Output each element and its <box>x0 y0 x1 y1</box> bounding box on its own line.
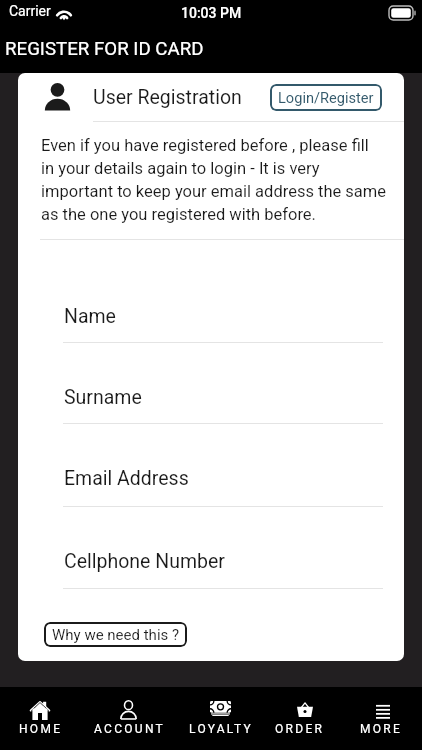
staticText: User Registration <box>93 86 242 109</box>
staticText: Surname <box>64 386 142 409</box>
staticText: Cellphone Number <box>64 550 225 573</box>
button[interactable]: MORE <box>338 687 422 750</box>
staticText: ORDER <box>275 722 325 736</box>
staticText: HOME <box>19 722 63 736</box>
staticText: Carrier <box>9 3 51 19</box>
button[interactable]: LOYALTY <box>178 687 262 750</box>
staticText: Email Address <box>64 467 189 490</box>
staticText: Login/Register <box>278 89 374 106</box>
staticText: 10:03 PM <box>181 5 242 21</box>
staticText: MORE <box>360 722 403 736</box>
staticText: REGISTER FOR ID CARD <box>5 38 204 60</box>
button[interactable]: ACCOUNT <box>87 687 171 750</box>
staticText: LOYALTY <box>189 722 253 736</box>
staticText: Why we need this ? <box>52 626 180 644</box>
staticText: Name <box>64 305 116 328</box>
button[interactable]: HOME <box>0 687 82 750</box>
button[interactable]: ORDER <box>257 687 341 750</box>
staticText: ACCOUNT <box>94 722 166 736</box>
staticText: Even if you have registered before , ple… <box>41 136 387 224</box>
button[interactable]: Login/Register <box>270 84 382 111</box>
button[interactable]: Why we need this ? <box>44 622 187 647</box>
